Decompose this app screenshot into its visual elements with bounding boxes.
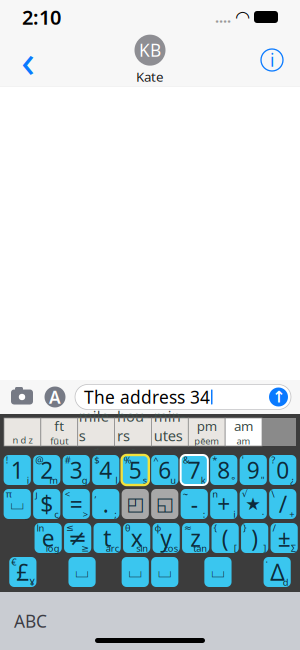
button[interactable]: @ bbox=[33, 455, 60, 485]
staticText: $ bbox=[94, 454, 99, 466]
staticText: A bbox=[49, 385, 61, 408]
staticText: hours bbox=[117, 406, 149, 445]
staticText: n bbox=[212, 488, 218, 500]
staticText: miles bbox=[79, 406, 114, 445]
button[interactable] bbox=[94, 523, 121, 553]
staticText: t bbox=[103, 523, 111, 553]
staticText: pēem bbox=[194, 435, 219, 447]
button[interactable]: / bbox=[271, 523, 298, 553]
staticText: ) bbox=[251, 523, 258, 553]
staticText: θ bbox=[125, 522, 131, 534]
staticText: \ bbox=[271, 488, 274, 500]
button[interactable]: Send bbox=[269, 387, 288, 406]
button[interactable] bbox=[204, 557, 231, 587]
staticText: _aūrs bbox=[121, 445, 144, 458]
staticText: ( bbox=[222, 523, 229, 553]
button[interactable] bbox=[68, 557, 96, 587]
button[interactable]: ABC bbox=[0, 597, 61, 644]
staticText: ‹ bbox=[21, 30, 35, 90]
staticText: [ bbox=[234, 542, 237, 554]
button[interactable]: € bbox=[9, 557, 36, 587]
staticText: i bbox=[233, 508, 235, 520]
button[interactable] bbox=[122, 489, 149, 519]
staticText: mini_t_s bbox=[153, 445, 187, 458]
button[interactable] bbox=[151, 489, 178, 519]
button[interactable]: , bbox=[92, 489, 119, 519]
button[interactable] bbox=[4, 418, 41, 446]
staticText: ⌴ bbox=[158, 563, 172, 580]
staticText: ≤ bbox=[66, 522, 74, 533]
button[interactable]: ln bbox=[35, 523, 62, 553]
staticText: ? bbox=[271, 454, 275, 466]
staticText: ⌴ bbox=[128, 563, 142, 580]
button[interactable]: } bbox=[241, 523, 268, 553]
button[interactable]: minutes bbox=[151, 418, 188, 446]
button[interactable]: miles bbox=[78, 418, 115, 446]
staticText: ft bbox=[54, 417, 64, 435]
staticText: u bbox=[170, 474, 176, 486]
button[interactable]: ! bbox=[4, 455, 31, 485]
staticText: ★ bbox=[245, 494, 261, 514]
staticText: : bbox=[203, 508, 206, 520]
button[interactable]: ft bbox=[41, 418, 78, 446]
staticText: ~ bbox=[183, 488, 188, 500]
staticText: minutes bbox=[154, 406, 186, 445]
button[interactable]: ȷ bbox=[33, 489, 60, 519]
button[interactable]: pm bbox=[188, 418, 225, 446]
button[interactable]: & bbox=[181, 455, 208, 485]
staticText: m bbox=[49, 474, 58, 486]
staticText: z bbox=[190, 523, 201, 553]
button[interactable]: ≤ bbox=[64, 523, 91, 553]
staticText: e bbox=[42, 523, 55, 553]
staticText: 0 bbox=[276, 455, 289, 485]
staticText: The address 34 bbox=[84, 385, 210, 408]
button[interactable]: * bbox=[210, 455, 237, 485]
button[interactable]: { bbox=[212, 523, 239, 553]
staticText: ↑ bbox=[272, 388, 285, 406]
button[interactable]: App Store bbox=[43, 385, 67, 409]
staticText: & bbox=[183, 454, 190, 466]
staticText: " bbox=[261, 474, 265, 486]
button[interactable]: Details bbox=[252, 38, 292, 82]
staticText: @ bbox=[35, 454, 43, 466]
button[interactable]: π bbox=[4, 489, 31, 519]
staticText: g bbox=[82, 474, 88, 486]
button[interactable]: ≈ bbox=[182, 523, 209, 553]
button[interactable]: # bbox=[63, 455, 90, 485]
staticText: ◠ bbox=[236, 7, 249, 27]
button[interactable]: ? bbox=[269, 455, 296, 485]
staticText: x bbox=[131, 523, 143, 553]
button[interactable]: \ bbox=[269, 489, 296, 519]
staticText: sin bbox=[136, 542, 148, 554]
staticText: % bbox=[124, 454, 132, 466]
button[interactable]: Back bbox=[8, 38, 48, 82]
button[interactable]: ^ bbox=[151, 455, 178, 485]
button[interactable]: < bbox=[63, 489, 90, 519]
button[interactable]: √ bbox=[240, 489, 267, 519]
button[interactable]: Camera bbox=[9, 386, 35, 408]
staticText: / bbox=[279, 489, 287, 519]
button[interactable]: n bbox=[210, 489, 237, 519]
button[interactable] bbox=[151, 557, 178, 587]
staticText: , bbox=[94, 488, 97, 500]
button[interactable]: θ bbox=[123, 523, 150, 553]
button[interactable]: am bbox=[225, 418, 262, 446]
staticText: £ bbox=[16, 557, 29, 587]
staticText: / bbox=[273, 522, 276, 534]
staticText: s bbox=[143, 474, 147, 486]
staticText: .... bbox=[215, 7, 231, 27]
button[interactable]: ϕ bbox=[153, 523, 180, 553]
button[interactable]: ' bbox=[240, 455, 267, 485]
button[interactable]: hours bbox=[115, 418, 151, 446]
staticText: π bbox=[6, 488, 12, 500]
button[interactable]: $ bbox=[92, 455, 119, 485]
button[interactable] bbox=[122, 557, 149, 587]
staticText: 6 bbox=[158, 455, 171, 485]
staticText: . bbox=[103, 489, 109, 519]
button[interactable]: · bbox=[263, 557, 291, 587]
button[interactable]: % bbox=[122, 455, 149, 485]
staticText: 2 bbox=[40, 455, 53, 485]
button[interactable]: ~ bbox=[181, 489, 208, 519]
staticText: ⌴ bbox=[211, 563, 225, 580]
button[interactable]: KB bbox=[134, 35, 165, 85]
